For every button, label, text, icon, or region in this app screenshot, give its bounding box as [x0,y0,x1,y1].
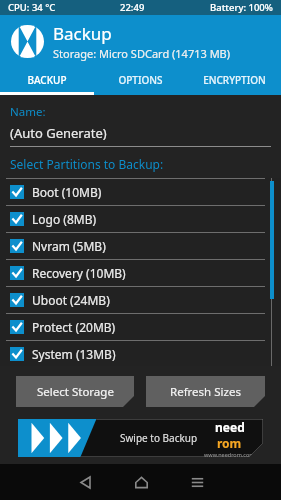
button[interactable]: OPTIONS [93,68,187,92]
button[interactable]: Menu [169,464,225,500]
staticText: Battery: 100% [210,1,273,14]
staticText: www.needrom.com [204,451,255,457]
staticText: Select Partitions to Backup: [10,156,164,172]
staticText: BACKUP [27,73,67,87]
staticText: Select Storage [37,384,114,400]
staticText: Recovery (10MB) [32,265,126,281]
button[interactable]: Logo (8MB) [0,206,281,232]
button[interactable]: Select Storage [16,376,134,407]
button[interactable]: Nvram (5MB) [0,233,281,259]
staticText: OPTIONS [118,73,163,87]
staticText: Boot (10MB) [32,184,102,200]
button[interactable]: Refresh Sizes [146,376,265,407]
staticText: Uboot (24MB) [32,292,110,308]
staticText: Name: [10,104,46,120]
staticText: Swipe to Backup [120,431,198,445]
staticText: 22:49 [120,1,145,14]
button[interactable]: Boot (10MB) [0,179,281,205]
button[interactable]: Swipe to Backup [18,419,263,457]
staticText: Protect (20MB) [32,319,116,335]
staticText: CPU: 34 °C [8,1,56,14]
staticText: Nvram (5MB) [32,238,106,254]
button[interactable]: System (13MB) [0,341,281,366]
staticText: System (13MB) [32,346,116,362]
button[interactable]: Uboot (24MB) [0,287,281,313]
staticText: Logo (8MB) [32,211,97,227]
button[interactable]: Recovery (10MB) [0,260,281,286]
staticText: (Auto Generate) [10,124,107,142]
staticText: rom [217,435,242,451]
button[interactable]: ENCRYPTION [187,68,281,92]
button[interactable]: BACKUP [0,68,93,92]
button[interactable]: Home [113,464,169,500]
staticText: Storage: Micro SDCard (14713 MB) [53,46,231,61]
other: App icon [11,25,44,58]
button[interactable]: Protect (20MB) [0,314,281,340]
staticText: Backup [53,22,112,45]
staticText: need [215,419,245,435]
staticText: Refresh Sizes [170,384,241,400]
staticText: ENCRYPTION [203,73,266,87]
button[interactable]: Back [57,464,113,500]
